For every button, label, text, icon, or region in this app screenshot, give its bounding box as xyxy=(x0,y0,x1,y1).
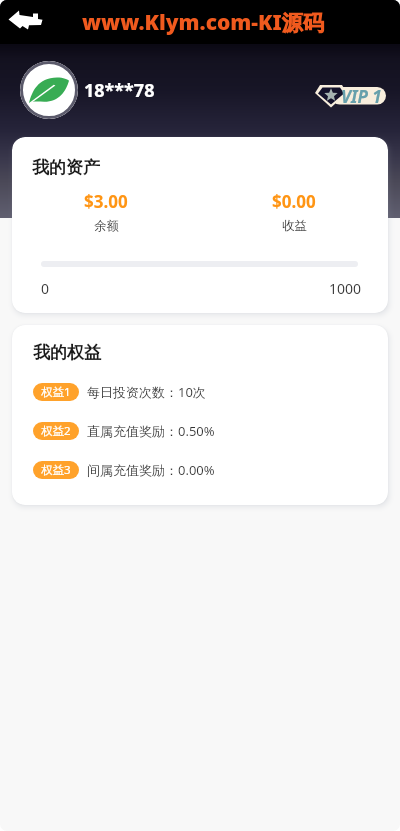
staticText: www.Klym.com-KI源码 xyxy=(82,8,324,37)
staticText: $3.00 xyxy=(84,190,128,213)
staticText: 我的权益 xyxy=(33,342,101,363)
button[interactable]: 权益2 xyxy=(33,422,372,440)
staticText: 每日投资次数：10次 xyxy=(87,383,206,401)
staticText: 我的资产 xyxy=(32,157,100,178)
button[interactable]: 权益3 xyxy=(33,461,372,479)
staticText: 收益 xyxy=(282,218,307,234)
staticText: 权益2 xyxy=(41,423,71,439)
staticText: $0.00 xyxy=(272,190,316,213)
button[interactable]: VIP level xyxy=(315,85,386,108)
staticText: 余额 xyxy=(94,218,119,234)
staticText: VIP 1 xyxy=(341,85,382,108)
staticText: 1000 xyxy=(329,279,362,298)
button[interactable]: 权益1 xyxy=(33,383,372,401)
button[interactable]: Back xyxy=(7,8,49,34)
staticText: 权益3 xyxy=(41,462,71,478)
staticText: 18***78 xyxy=(84,78,155,103)
staticText: 间属充值奖励：0.00% xyxy=(87,461,215,479)
staticText: 直属充值奖励：0.50% xyxy=(87,422,215,440)
staticText: 0 xyxy=(41,279,50,298)
staticText: 权益1 xyxy=(41,384,71,400)
